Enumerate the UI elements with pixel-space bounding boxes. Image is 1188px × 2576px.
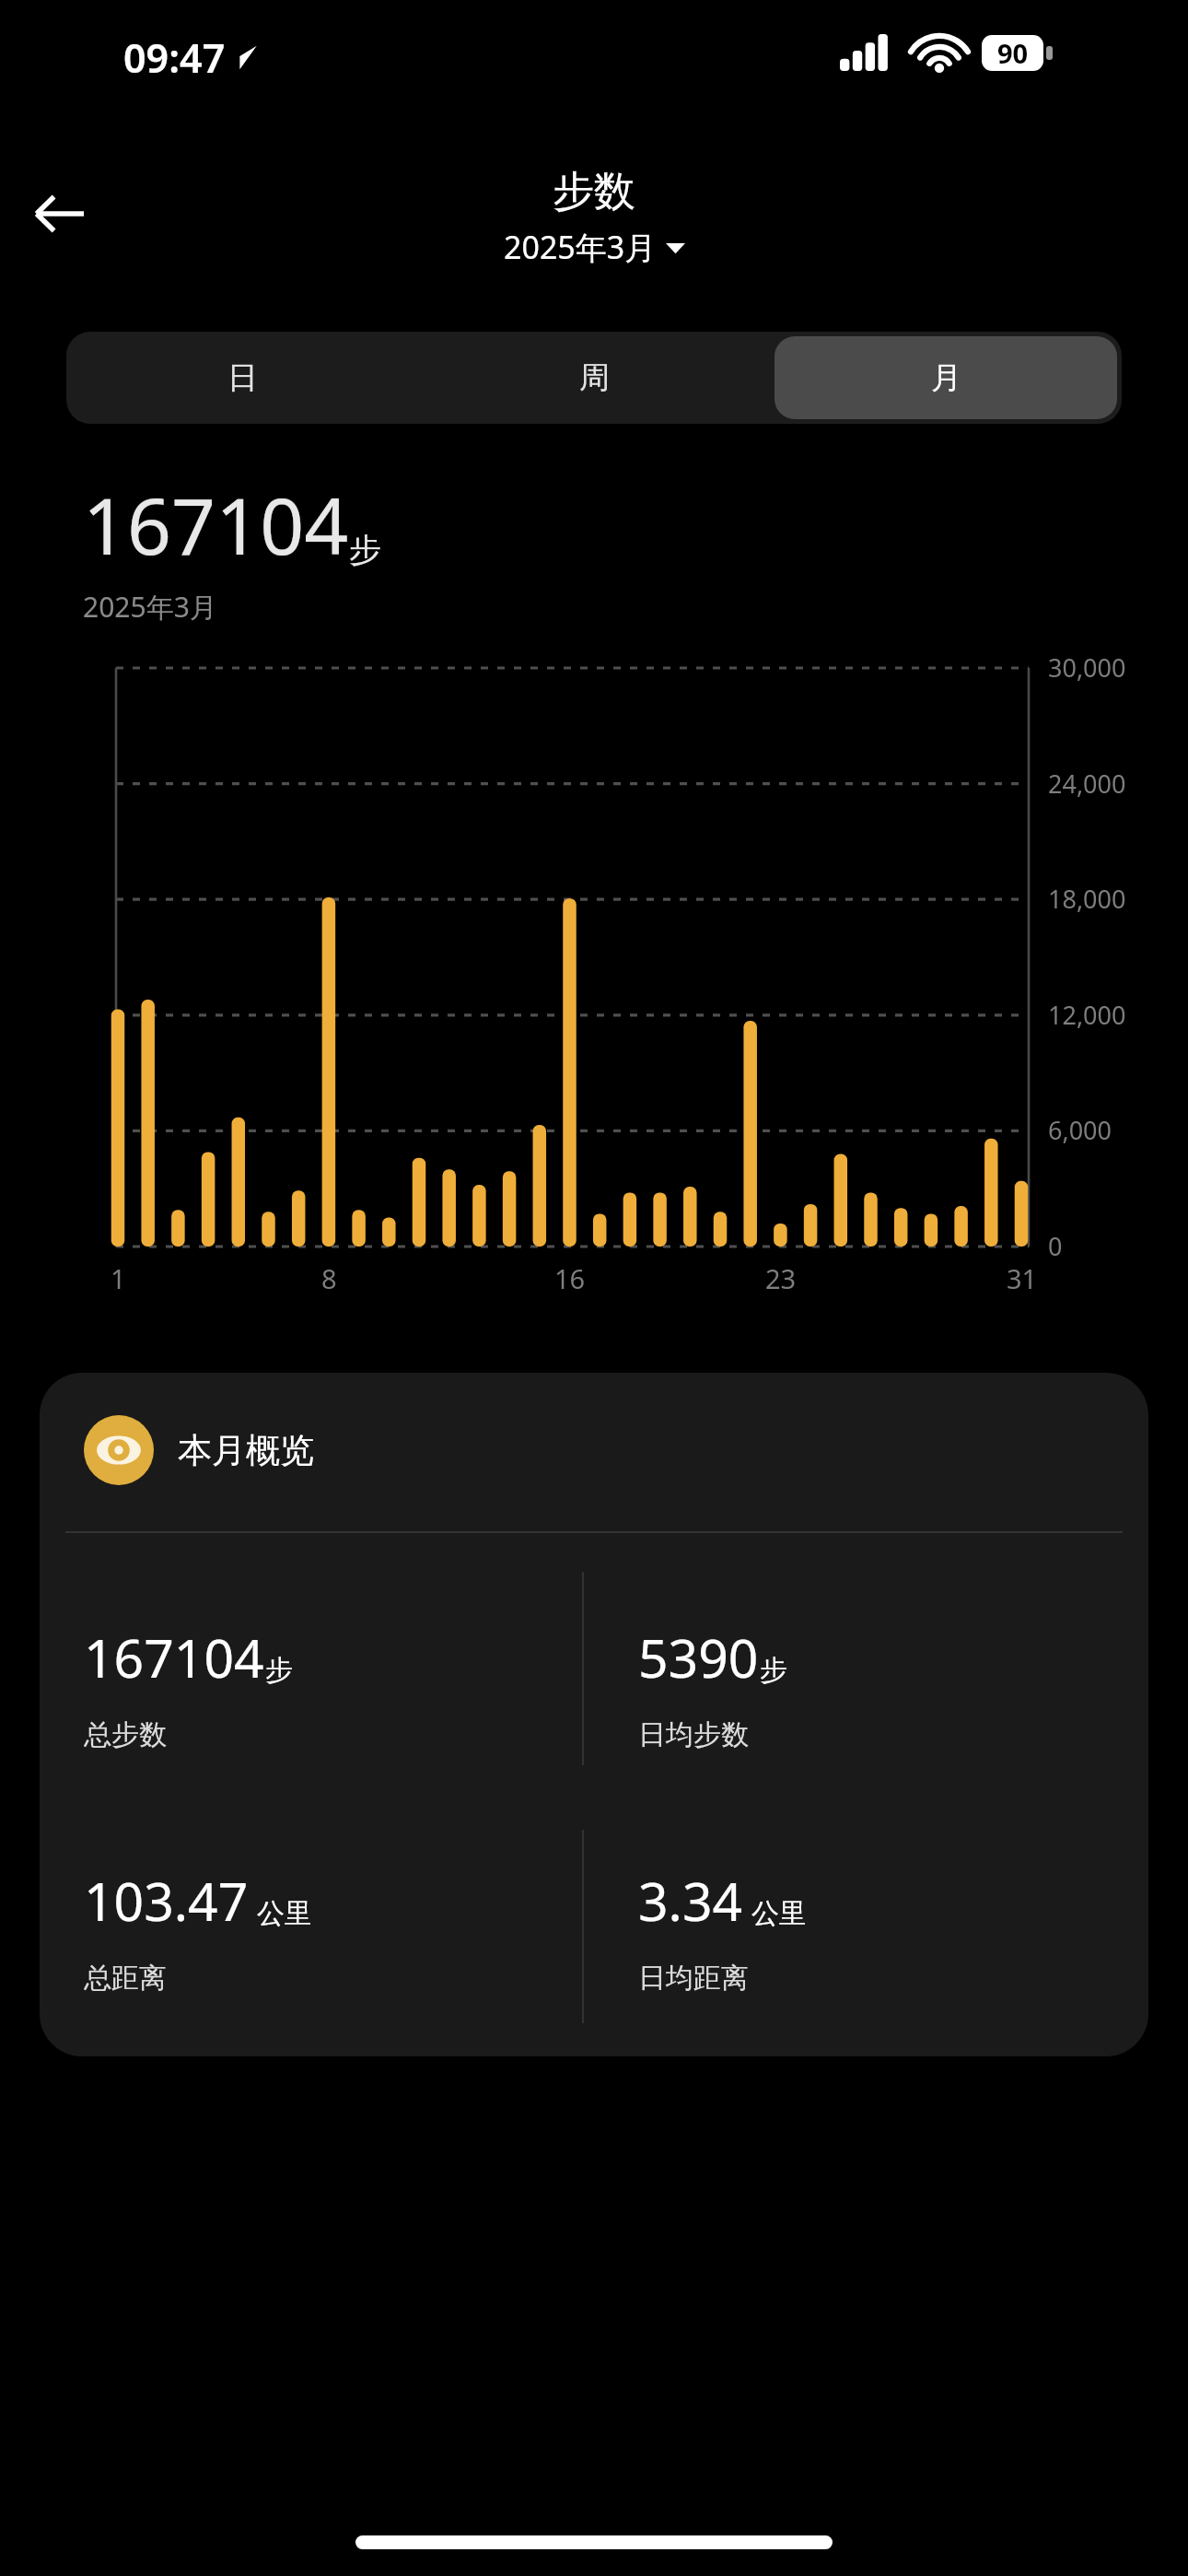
staticText: 步数 — [553, 166, 635, 218]
staticText: 公里 — [257, 1896, 312, 1931]
staticText: 总步数 — [84, 1717, 167, 1752]
staticText: 步 — [349, 530, 381, 570]
staticText: 3.34 — [638, 1865, 743, 1937]
staticText: 步 — [760, 1653, 787, 1688]
staticText: 30,000 — [1048, 650, 1126, 685]
staticText: 月 — [931, 358, 961, 397]
staticText: 日 — [227, 358, 258, 397]
staticText: 周 — [579, 358, 610, 397]
staticText: 1 — [111, 1260, 126, 1296]
button[interactable]: 月 — [775, 336, 1117, 419]
button[interactable]: 日 — [71, 336, 413, 419]
button[interactable]: 本月概览 — [40, 1373, 1148, 2056]
staticText: 日均步数 — [638, 1717, 749, 1752]
staticText: 12,000 — [1048, 998, 1126, 1032]
staticText: 09:47 — [123, 30, 226, 85]
staticText: 0 — [1048, 1229, 1063, 1263]
staticText: 2025年3月 — [83, 588, 217, 626]
staticText: 步 — [265, 1653, 293, 1688]
staticText: 167104 — [83, 472, 349, 577]
staticText: 8 — [321, 1260, 337, 1296]
staticText: 24,000 — [1048, 767, 1126, 801]
staticText: 日均距离 — [638, 1961, 749, 1996]
staticText: 本月概览 — [178, 1429, 314, 1472]
button[interactable]: 2025年3月 — [504, 226, 685, 268]
staticText: 2025年3月 — [504, 226, 657, 268]
staticText: 103.47 — [84, 1865, 249, 1937]
staticText: 90 — [997, 35, 1029, 71]
staticText: 总距离 — [84, 1961, 167, 1996]
button[interactable]: 周 — [423, 336, 765, 419]
staticText: 5390 — [638, 1622, 759, 1693]
staticText: 23 — [765, 1260, 797, 1296]
staticText: 31 — [1007, 1260, 1038, 1296]
staticText: 18,000 — [1048, 882, 1126, 916]
button[interactable]: Back — [17, 171, 101, 256]
staticText: 16 — [554, 1260, 586, 1296]
staticText: 公里 — [751, 1896, 807, 1931]
staticText: 167104 — [84, 1622, 264, 1693]
staticText: 6,000 — [1048, 1113, 1112, 1147]
